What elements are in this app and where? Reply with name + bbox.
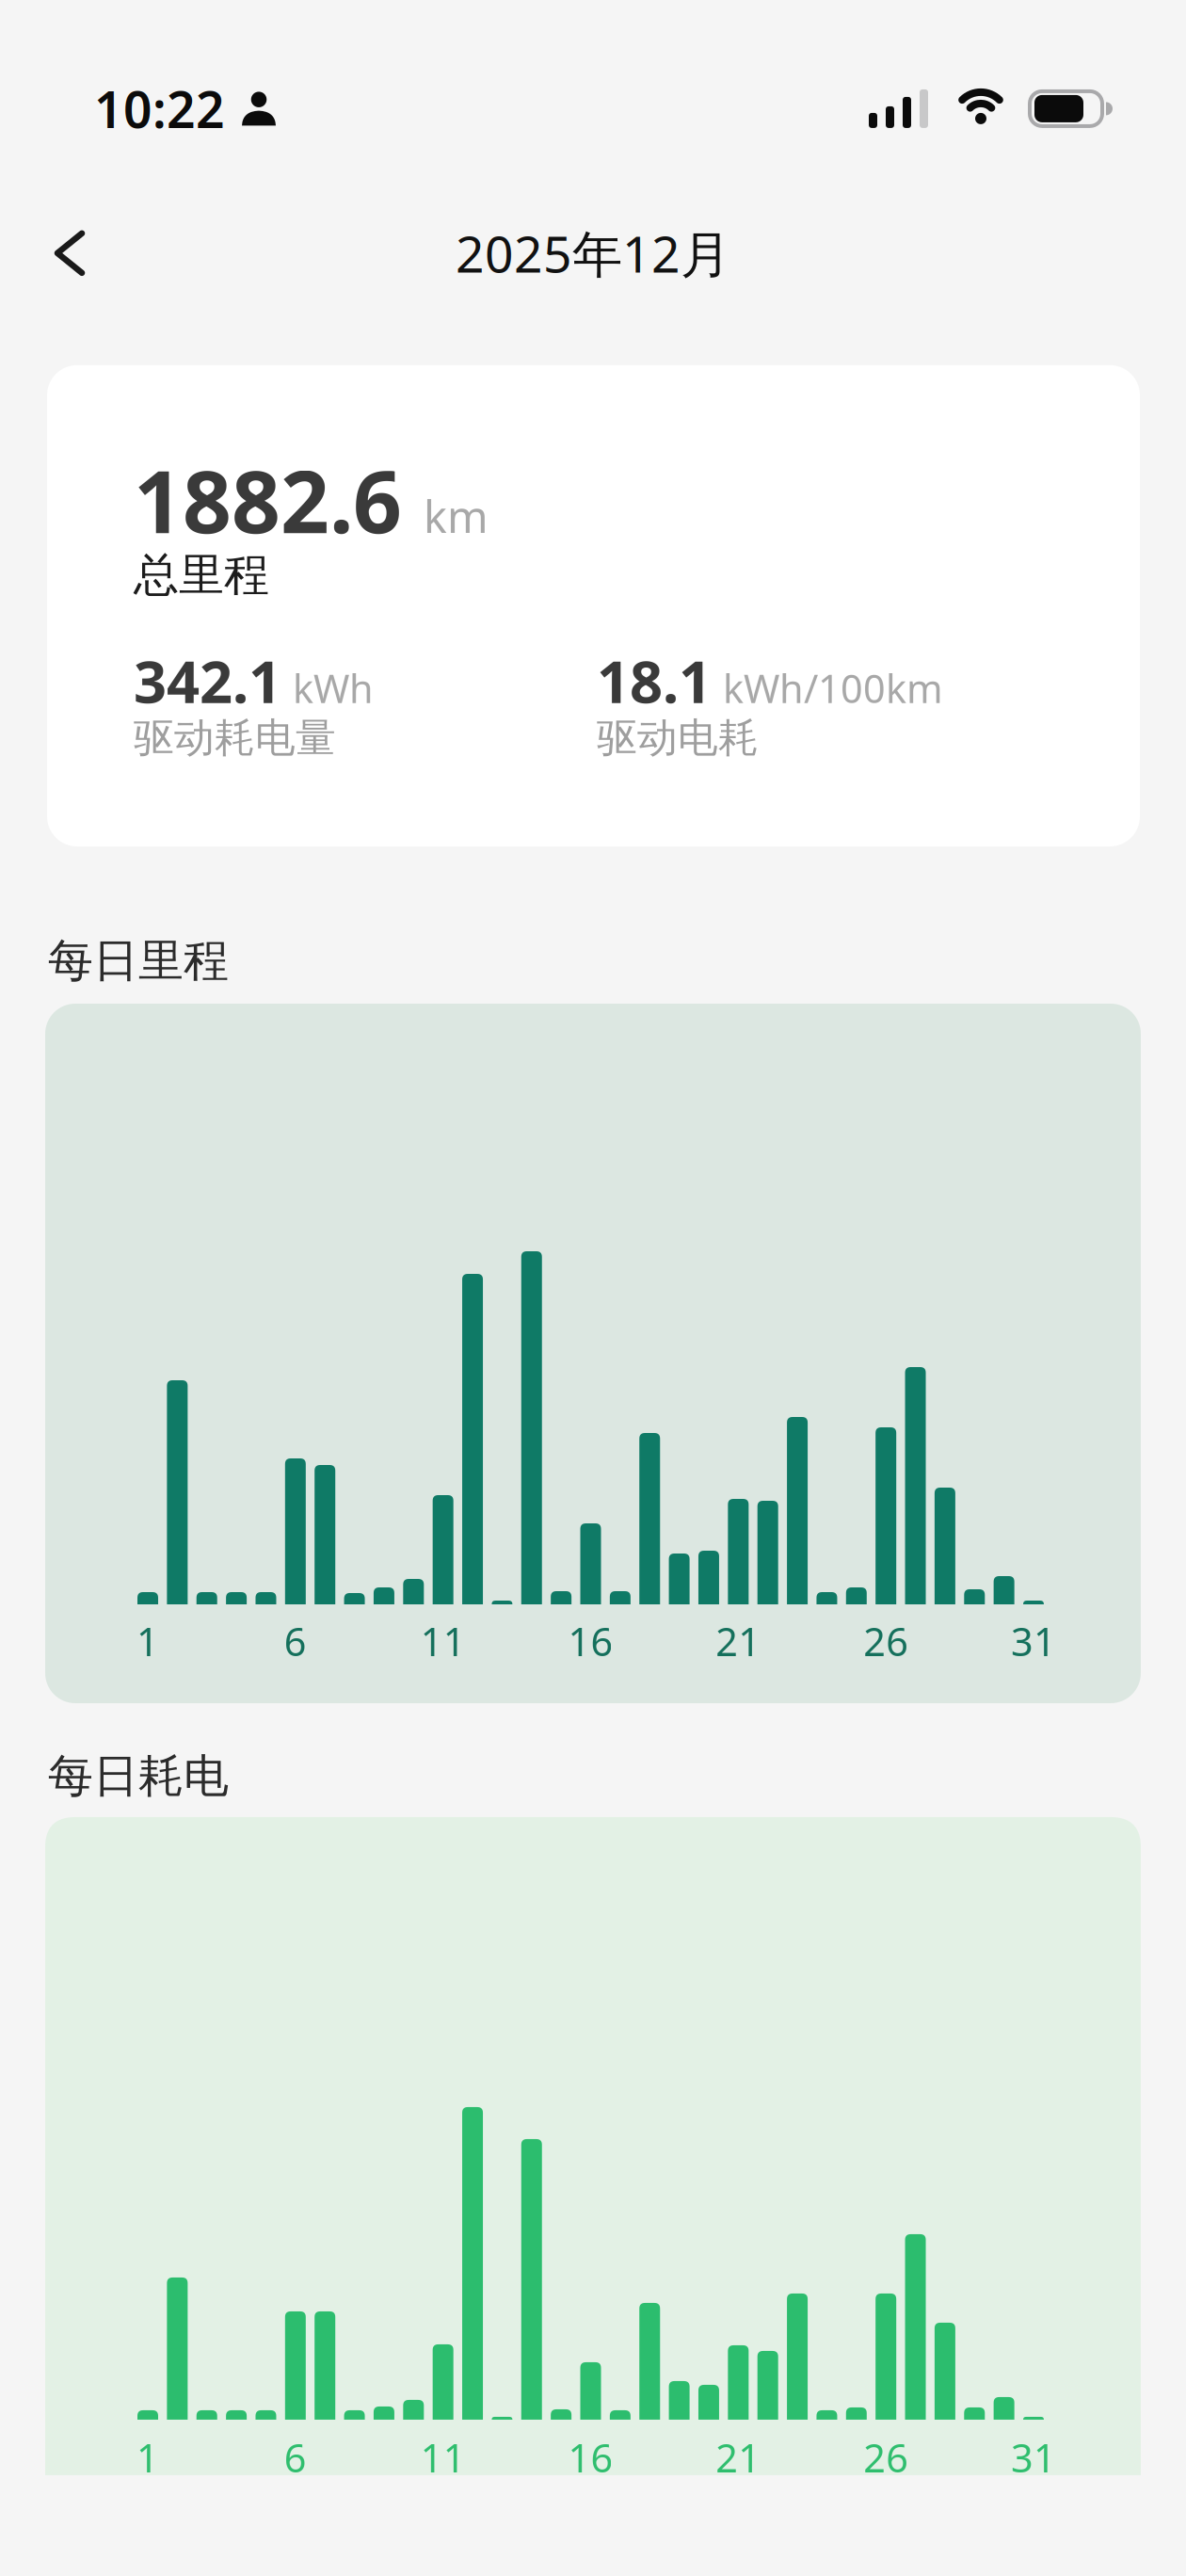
staticText: 2025年12月 xyxy=(456,220,730,286)
staticText: 1882.6 xyxy=(134,443,402,557)
staticText: kWh/100km xyxy=(723,662,943,714)
staticText: 6 xyxy=(284,1615,307,1667)
staticText: 16 xyxy=(568,2431,613,2483)
staticText: 21 xyxy=(716,2431,761,2483)
staticText: 1 xyxy=(136,1615,159,1667)
staticText: 342.1 xyxy=(134,642,281,719)
staticText: 21 xyxy=(716,1615,761,1667)
staticText: 16 xyxy=(568,1615,613,1667)
staticText: 26 xyxy=(863,1615,909,1667)
staticText: 1 xyxy=(136,2431,159,2483)
staticText: km xyxy=(424,487,489,545)
staticText: 11 xyxy=(420,2431,466,2483)
staticText: 11 xyxy=(420,1615,466,1667)
staticText: 26 xyxy=(863,2431,909,2483)
staticText: 6 xyxy=(284,2431,307,2483)
staticText: 每日里程 xyxy=(48,933,229,989)
staticText: 31 xyxy=(1011,1615,1056,1667)
button[interactable]: Back xyxy=(0,224,110,282)
staticText: kWh xyxy=(293,662,374,714)
staticText: 31 xyxy=(1011,2431,1056,2483)
staticText: 驱动电耗 xyxy=(597,713,759,763)
staticText: 总里程 xyxy=(134,547,269,603)
staticText: 10:22 xyxy=(94,75,225,142)
staticText: 驱动耗电量 xyxy=(134,713,336,763)
staticText: 每日耗电 xyxy=(48,1748,229,1804)
staticText: 18.1 xyxy=(597,642,712,719)
